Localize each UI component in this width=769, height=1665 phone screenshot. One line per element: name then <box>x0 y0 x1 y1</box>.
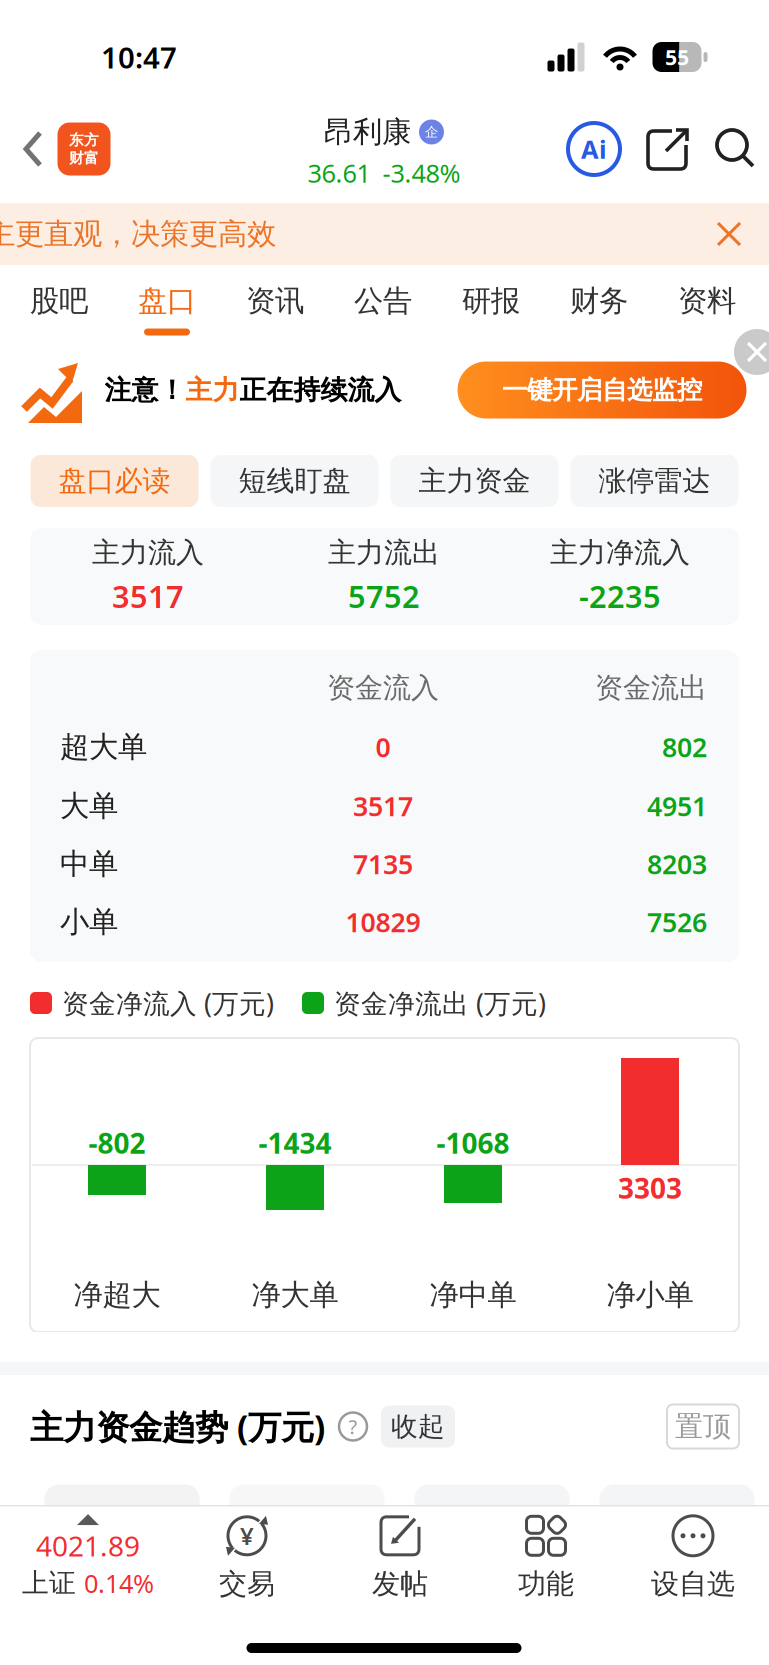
staticText: 主力 <box>185 374 239 406</box>
button[interactable]: 资讯 <box>246 283 304 319</box>
staticText: 主力资金 <box>418 464 530 498</box>
button[interactable]: 发帖 <box>330 1507 470 1607</box>
staticText: 发帖 <box>372 1567 428 1601</box>
button[interactable] <box>646 127 690 171</box>
button[interactable] <box>715 128 757 170</box>
staticText: -3.48% <box>382 156 460 190</box>
button[interactable]: 涨停雷达 <box>570 455 738 507</box>
button[interactable]: Ai <box>568 123 620 175</box>
staticText: 主更直观，决策更高效 <box>0 216 276 252</box>
staticText: 财务 <box>570 283 628 319</box>
button[interactable]: 公告 <box>354 283 412 319</box>
staticText: 4021.89 <box>36 1527 140 1564</box>
staticText: 净小单 <box>606 1277 693 1313</box>
staticText: 交易 <box>219 1567 275 1601</box>
staticText: 功能 <box>518 1567 574 1601</box>
staticText: 研报 <box>462 283 520 319</box>
staticText: 主力流出 <box>328 535 440 570</box>
staticText: 802 <box>662 729 707 765</box>
staticText: 正在持续流入 <box>239 374 401 406</box>
staticText: 收起 <box>391 1410 445 1443</box>
staticText: 主力流入 <box>92 535 204 570</box>
staticText: 净中单 <box>429 1277 516 1313</box>
staticText: -802 <box>88 1124 145 1162</box>
button[interactable]: ? <box>339 1412 367 1440</box>
staticText: 昂利康 <box>324 114 411 150</box>
button[interactable]: 置顶 <box>667 1404 739 1448</box>
staticText: 公告 <box>354 283 412 319</box>
button[interactable] <box>414 1484 569 1524</box>
staticText: 财富 <box>69 149 99 167</box>
staticText: 资金净流入 (万元) <box>62 985 274 1021</box>
staticText: 短线盯盘 <box>238 464 350 498</box>
button[interactable]: 功能 <box>476 1507 616 1607</box>
staticText: 10829 <box>345 904 420 940</box>
staticText: 置顶 <box>675 1409 731 1444</box>
staticText: 大单 <box>60 788 118 824</box>
staticText: 0.14% <box>84 1566 154 1600</box>
staticText: -1434 <box>258 1124 331 1162</box>
button[interactable]: 短线盯盘 <box>210 455 378 507</box>
staticText: 7526 <box>647 904 707 940</box>
button[interactable]: 股吧 <box>30 283 88 319</box>
staticText: Ai <box>581 132 607 166</box>
button[interactable]: 设自选 <box>623 1507 763 1607</box>
staticText: ? <box>348 1413 357 1440</box>
button[interactable] <box>24 131 44 167</box>
staticText: 净大单 <box>251 1277 338 1313</box>
button[interactable]: 研报 <box>462 283 520 319</box>
button[interactable] <box>229 1484 384 1524</box>
staticText: 5752 <box>348 576 420 616</box>
staticText: 7135 <box>353 846 413 882</box>
staticText: 资金流入 <box>327 671 439 705</box>
staticText: 注意！ <box>104 374 185 406</box>
staticText: -2235 <box>579 576 661 616</box>
staticText: 10:47 <box>101 37 177 76</box>
staticText: 资金净流出 (万元) <box>334 985 546 1021</box>
staticText: 4951 <box>647 788 707 824</box>
staticText: 8203 <box>647 846 707 882</box>
staticText: 企 <box>425 124 438 140</box>
staticText: 超大单 <box>60 729 147 765</box>
button[interactable]: 资料 <box>678 283 736 319</box>
button[interactable]: 一键开启自选监控 <box>457 361 746 418</box>
button[interactable]: 东方 <box>57 122 110 175</box>
staticText: 36.61 <box>307 156 370 190</box>
staticText: 上证 <box>22 1567 76 1599</box>
button[interactable] <box>599 1484 754 1524</box>
staticText: 55 <box>665 43 689 71</box>
button[interactable] <box>734 329 769 375</box>
button[interactable]: 主力资金 <box>390 455 558 507</box>
staticText: 盘口 <box>138 283 196 319</box>
staticText: 资金流出 <box>595 671 707 705</box>
staticText: ¥ <box>240 1520 254 1552</box>
button[interactable] <box>44 1484 199 1524</box>
staticText: 3303 <box>618 1169 682 1207</box>
staticText: 股吧 <box>30 283 88 319</box>
button[interactable]: 收起 <box>381 1405 455 1447</box>
staticText: 中单 <box>60 846 118 882</box>
staticText: 小单 <box>60 904 118 940</box>
staticText: 3517 <box>112 576 184 616</box>
staticText: 资讯 <box>246 283 304 319</box>
staticText: 设自选 <box>651 1567 735 1601</box>
button[interactable]: 财务 <box>570 283 628 319</box>
button[interactable]: 4021.89 <box>0 1502 183 1612</box>
staticText: 盘口必读 <box>58 464 170 498</box>
button[interactable]: ¥ <box>177 1507 317 1607</box>
button[interactable] <box>714 219 744 249</box>
staticText: 主力资金趋势 (万元) <box>30 1404 325 1449</box>
staticText: -1068 <box>436 1124 509 1162</box>
staticText: 一键开启自选监控 <box>502 374 702 405</box>
staticText: 涨停雷达 <box>598 464 710 498</box>
staticText: 东方 <box>69 131 99 149</box>
button[interactable]: 盘口 <box>138 283 196 319</box>
staticText: 3517 <box>353 788 413 824</box>
staticText: 资料 <box>678 283 736 319</box>
staticText: 净超大 <box>73 1277 160 1313</box>
staticText: 0 <box>375 729 390 765</box>
staticText: 主力净流入 <box>550 535 690 570</box>
button[interactable]: 盘口必读 <box>30 455 198 507</box>
